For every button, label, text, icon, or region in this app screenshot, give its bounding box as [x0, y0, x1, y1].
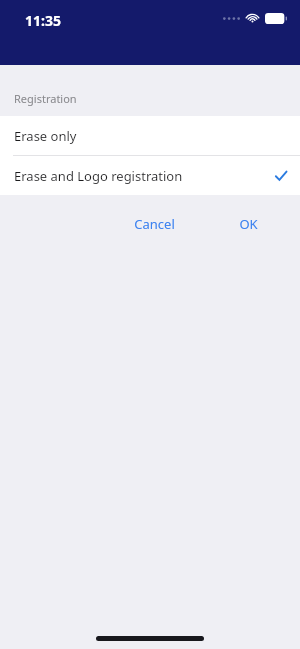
button[interactable]: Cancel — [124, 210, 185, 238]
other: Home indicator — [96, 636, 204, 641]
staticText: Erase and Logo registration — [14, 167, 183, 185]
button[interactable]: Erase only — [0, 116, 300, 155]
button[interactable]: Erase and Logo registration — [0, 156, 300, 195]
staticText: 11:35 — [25, 11, 61, 30]
button[interactable]: OK — [229, 210, 268, 238]
staticText: Registration — [14, 91, 77, 106]
staticText: OK — [239, 215, 258, 233]
staticText: Erase only — [14, 127, 77, 145]
staticText: Cancel — [134, 215, 175, 233]
